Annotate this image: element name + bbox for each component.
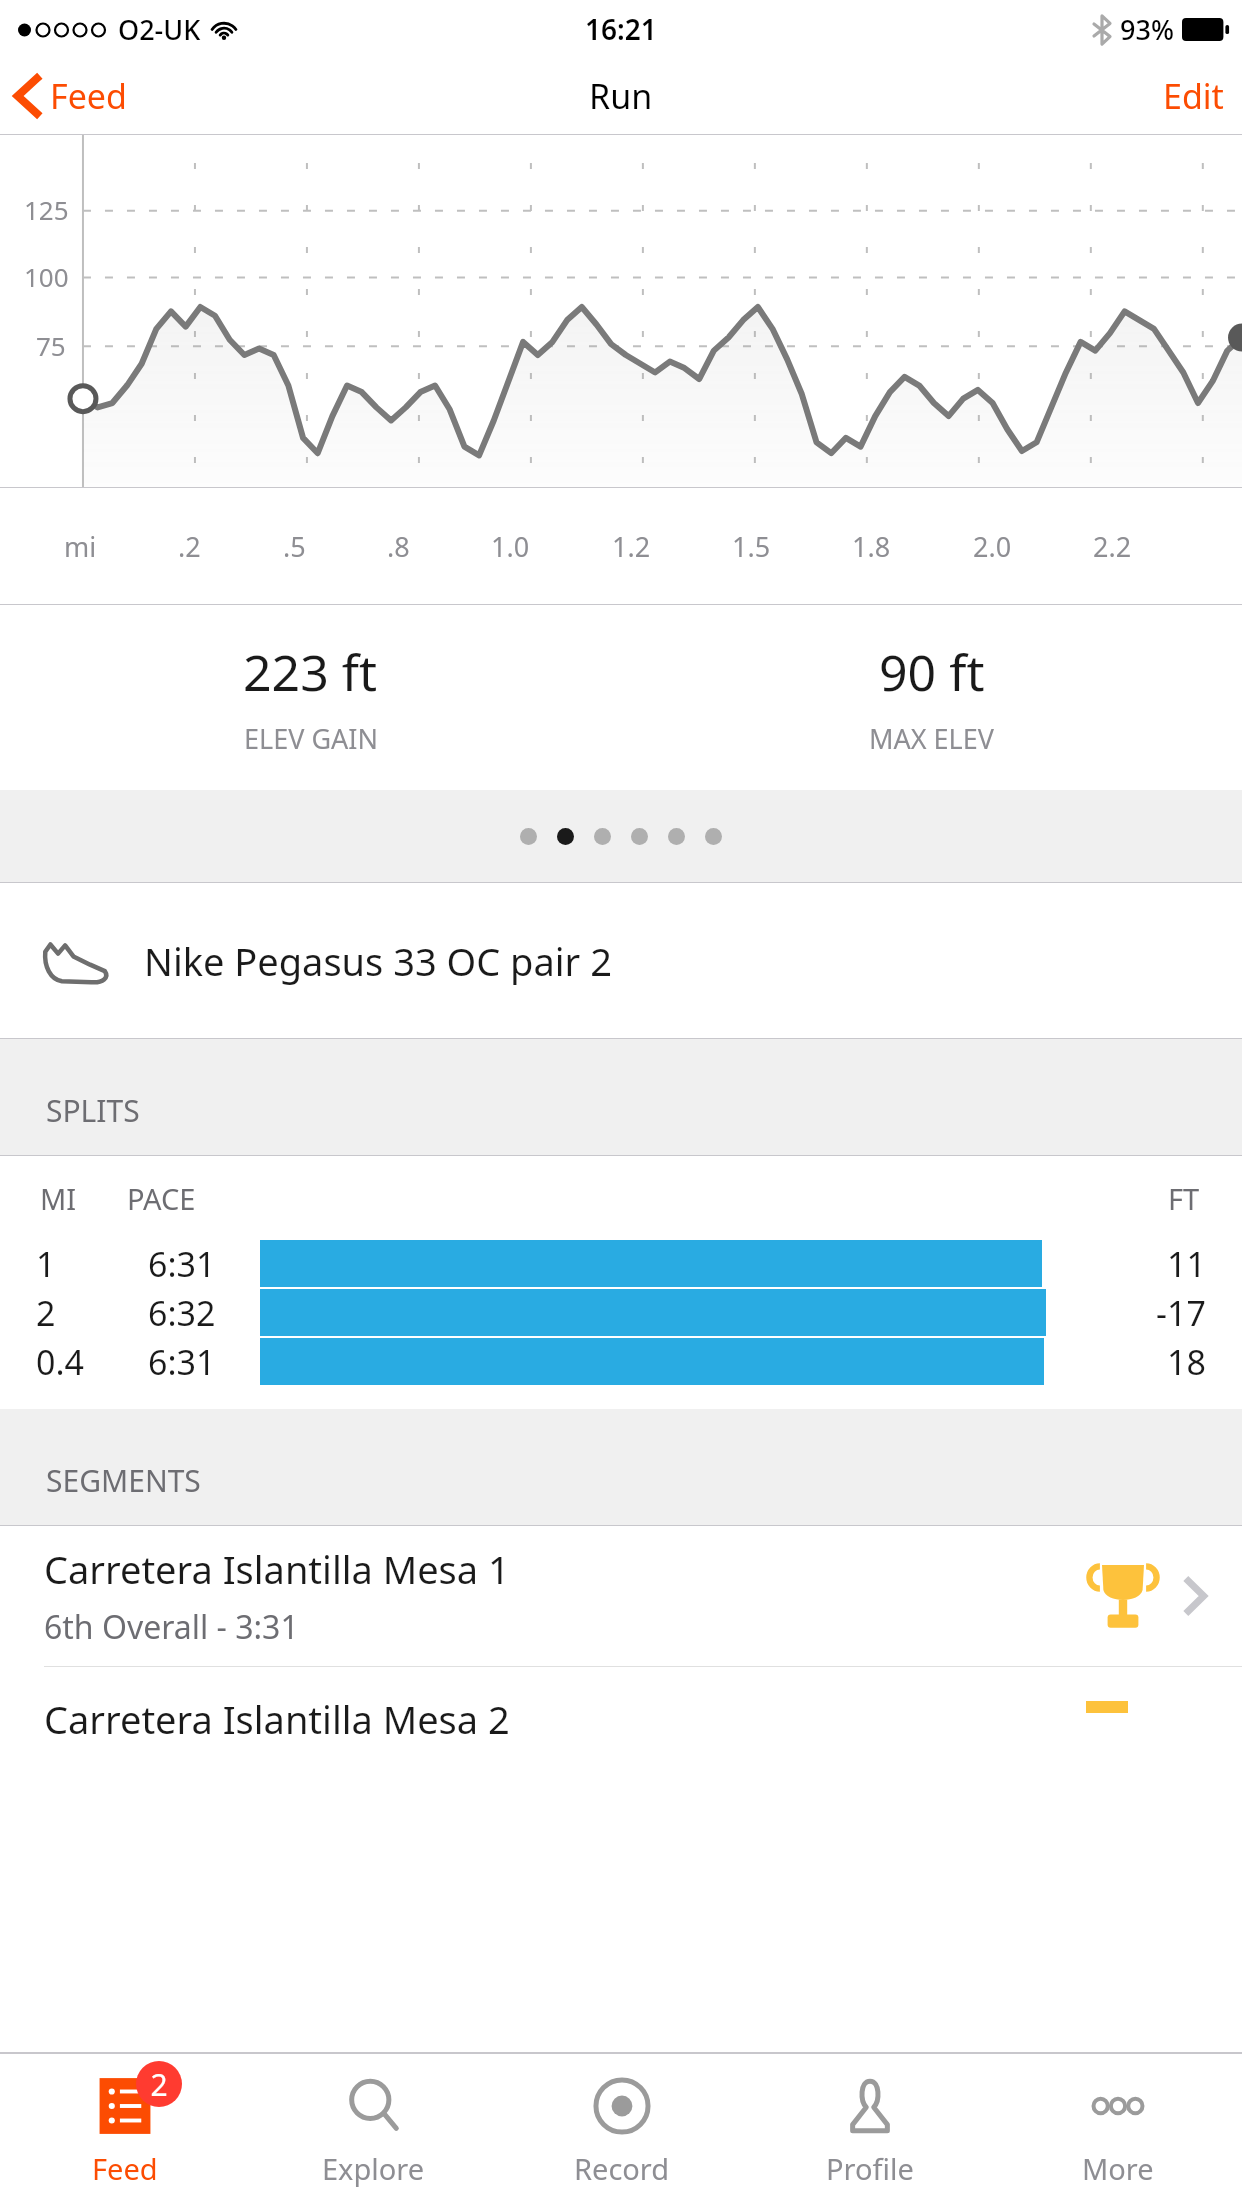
button[interactable]: Carretera Islantilla Mesa 2 (0, 1667, 1242, 1751)
staticText: 1.8 (852, 528, 891, 565)
staticText: .5 (283, 528, 306, 565)
staticText: Feed (50, 73, 127, 119)
staticText: SPLITS (46, 1090, 140, 1131)
button[interactable]: 1 (0, 1240, 1242, 1287)
button[interactable]: Edit (1145, 65, 1242, 127)
other: Profile (839, 2075, 901, 2137)
button[interactable]: Explore (249, 2054, 498, 2208)
staticText: FT (1168, 1179, 1200, 1218)
staticText: 2.0 (973, 528, 1012, 565)
staticText: 125 (24, 192, 69, 227)
button[interactable]: Profile (746, 2054, 994, 2208)
staticText: 6:31 (148, 1241, 216, 1287)
staticText: Run (589, 73, 653, 119)
other: Explore (343, 2075, 405, 2137)
staticText: 90 ft (879, 638, 985, 706)
staticText: 6:31 (148, 1339, 216, 1385)
staticText: Explore (322, 2149, 425, 2188)
staticText: 2.2 (1093, 528, 1132, 565)
staticText: Edit (1163, 73, 1224, 119)
button[interactable]: 2 (0, 1289, 1242, 1336)
staticText: Carretera Islantilla Mesa 2 (44, 1693, 510, 1745)
staticText: MAX ELEV (869, 720, 994, 757)
staticText: 18 (1167, 1339, 1206, 1385)
staticText: Feed (92, 2149, 158, 2188)
staticText: Record (574, 2149, 670, 2188)
staticText: 1.5 (732, 528, 771, 565)
staticText: .8 (387, 528, 410, 565)
staticText: SEGMENTS (46, 1460, 201, 1501)
staticText: 223 ft (243, 638, 378, 706)
staticText: 93% (1120, 11, 1174, 48)
staticText: MI (40, 1179, 77, 1218)
staticText: 0.4 (36, 1339, 85, 1385)
staticText: Profile (826, 2149, 914, 2188)
button[interactable]: Record (498, 2054, 746, 2208)
staticText: 6th Overall - 3:31 (44, 1605, 299, 1649)
staticText: 6:32 (148, 1290, 216, 1336)
staticText: 1.0 (491, 528, 530, 565)
staticText: 75 (36, 328, 66, 363)
staticText: ELEV GAIN (244, 720, 378, 757)
button[interactable]: Feed (0, 67, 141, 125)
staticText: 1 (36, 1241, 56, 1287)
other: Feed (94, 2075, 156, 2137)
staticText: 1.2 (612, 528, 651, 565)
staticText: -17 (1156, 1290, 1206, 1336)
staticText: 2 (36, 1290, 56, 1336)
button[interactable]: More (994, 2054, 1242, 2208)
staticText: 16:21 (585, 10, 657, 48)
staticText: Nike Pegasus 33 OC pair 2 (144, 935, 612, 987)
other: Open segment (1184, 1575, 1208, 1617)
staticText: PACE (127, 1179, 196, 1218)
staticText: 11 (1167, 1241, 1206, 1287)
staticText: O2-UK (118, 11, 201, 48)
button[interactable]: Carretera Islantilla Mesa 1 (0, 1526, 1242, 1666)
staticText: 100 (24, 259, 69, 294)
other: More (1087, 2075, 1149, 2137)
staticText: .2 (178, 528, 201, 565)
staticText: 2 (150, 2064, 168, 2105)
button[interactable]: Feed (0, 2054, 249, 2208)
staticText: More (1082, 2149, 1154, 2188)
button[interactable]: 0.4 (0, 1338, 1242, 1385)
button[interactable]: Nike Pegasus 33 OC pair 2 (0, 883, 1242, 1038)
staticText: Carretera Islantilla Mesa 1 (44, 1543, 510, 1595)
other: Record (591, 2075, 653, 2137)
staticText: mi (64, 528, 97, 565)
